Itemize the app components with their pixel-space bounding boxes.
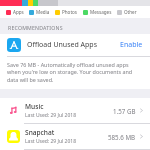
button[interactable]: Offload Unused Apps xyxy=(0,34,150,56)
staticText: Music xyxy=(25,102,44,111)
staticText: Last Used: 29 Jul 2018 xyxy=(25,112,77,119)
staticText: Snapchat xyxy=(25,128,55,137)
staticText: RECOMMENDATIONS xyxy=(8,24,63,31)
staticText: Enable xyxy=(120,40,143,50)
staticText: Save 76 MB - Automatically offload unuse… xyxy=(7,61,140,84)
staticText: Other xyxy=(124,9,137,15)
staticText: Messages xyxy=(90,9,112,15)
staticText: 1.57 GB xyxy=(113,107,136,115)
staticText: Photos xyxy=(62,9,78,15)
staticText: Media xyxy=(36,9,50,15)
staticText: Apps xyxy=(13,9,24,15)
button[interactable]: Music xyxy=(0,98,150,123)
staticText: Offload Unused Apps xyxy=(27,40,120,50)
staticText: Last Used: 29 Jul 2018 xyxy=(25,138,77,145)
button[interactable]: Snapchat xyxy=(0,124,150,149)
staticText: 585.6 MB xyxy=(108,133,136,141)
